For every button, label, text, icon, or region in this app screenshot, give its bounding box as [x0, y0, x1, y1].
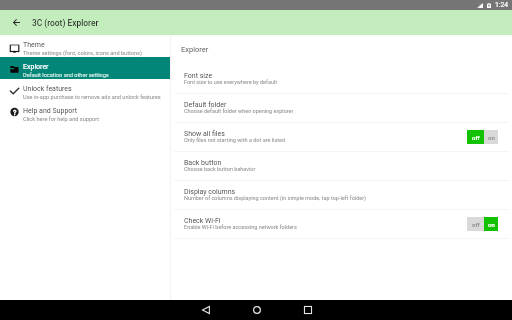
button[interactable]: Explorer	[0, 57, 170, 79]
staticText: Check Wi-Fi	[184, 217, 221, 225]
button[interactable]: Back	[180, 300, 231, 320]
button[interactable]: off	[467, 130, 484, 144]
staticText: Default folder	[184, 101, 227, 109]
button[interactable]: on	[484, 217, 498, 231]
button[interactable]: Back	[0, 10, 32, 35]
staticText: Help and Support	[23, 107, 78, 115]
staticText: Only files not starting with a dot are l…	[184, 137, 286, 143]
button[interactable]: Recents	[282, 300, 333, 320]
button[interactable]: Back button	[171, 152, 512, 180]
staticText: Choose back button behavior	[184, 166, 256, 172]
staticText: off	[472, 221, 480, 228]
staticText: Use in-app purchase to remove ads and un…	[23, 94, 161, 101]
staticText: Explorer	[23, 63, 49, 71]
staticText: Back button	[184, 159, 222, 167]
staticText: 3C (root) Explorer	[32, 18, 99, 28]
button[interactable]: Show all files	[171, 123, 512, 151]
staticText: Theme	[23, 41, 45, 49]
button[interactable]: ?	[0, 101, 170, 123]
staticText: Unlock features	[23, 85, 72, 93]
button[interactable]: off	[467, 217, 484, 231]
button[interactable]: Default folder	[171, 94, 512, 122]
staticText: on	[488, 134, 495, 141]
staticText: Choose default folder when opening explo…	[184, 108, 294, 114]
staticText: ?	[13, 109, 17, 117]
staticText: Font size to use everywhere by default	[184, 79, 278, 85]
staticText: Explorer	[181, 45, 209, 54]
staticText: Font size	[184, 72, 213, 80]
button[interactable]: Theme	[0, 35, 170, 57]
staticText: Enable Wi-Fi before accessing network fo…	[184, 224, 297, 230]
staticText: Theme settings (font, colors, icons and …	[23, 50, 142, 57]
button[interactable]: on	[484, 130, 498, 144]
staticText: Default location and other settings	[23, 72, 109, 79]
staticText: on	[488, 221, 495, 228]
button[interactable]: Display columns	[171, 181, 512, 209]
staticText: Number of columns displaying content (in…	[184, 195, 366, 201]
button[interactable]: Check Wi-Fi	[171, 210, 512, 238]
button[interactable]: Font size	[171, 65, 512, 93]
staticText: off	[472, 134, 480, 141]
staticText: Show all files	[184, 130, 225, 138]
button[interactable]: Unlock features	[0, 79, 170, 101]
staticText: Display columns	[184, 188, 236, 196]
staticText: 1:24	[495, 1, 509, 9]
button[interactable]: Home	[231, 300, 282, 320]
staticText: Click here for help and support	[23, 116, 100, 123]
